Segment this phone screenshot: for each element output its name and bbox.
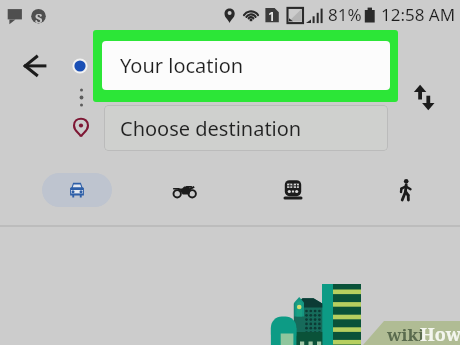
staticText: 81% xyxy=(328,3,362,26)
button[interactable]: Transit xyxy=(271,173,315,207)
button[interactable]: Choose destination xyxy=(104,105,388,151)
staticText: 1 xyxy=(268,7,276,25)
staticText: 12:58 AM xyxy=(381,3,456,26)
button[interactable]: Back xyxy=(21,52,51,80)
button[interactable]: Driving xyxy=(42,173,112,207)
button[interactable]: Your location xyxy=(102,41,390,90)
button[interactable]: Motorcycle xyxy=(160,173,210,207)
staticText: wiki xyxy=(387,323,425,345)
button[interactable]: Swap start and destination xyxy=(410,82,440,114)
staticText: How xyxy=(420,322,460,345)
button[interactable]: Walking xyxy=(387,171,425,209)
staticText: S xyxy=(35,9,43,27)
staticText: Choose destination xyxy=(120,115,302,142)
staticText: Your location xyxy=(120,52,244,79)
